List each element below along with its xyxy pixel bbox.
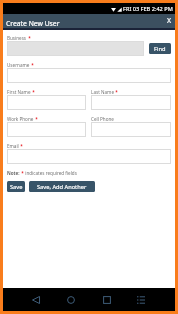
button[interactable]: Save [7, 181, 25, 192]
button[interactable] [7, 149, 171, 164]
staticText: FRI 03 FEB 2:42 PM [123, 5, 173, 13]
button[interactable]: Home [62, 291, 80, 309]
button[interactable]: Menu [132, 291, 150, 309]
staticText: Find [154, 45, 166, 53]
button[interactable] [7, 122, 86, 137]
staticText: Save, Add Another [37, 183, 87, 191]
staticText: Cell Phone [91, 116, 114, 122]
staticText: * [31, 89, 35, 95]
button[interactable] [7, 95, 86, 110]
staticText: * [30, 62, 34, 68]
staticText: * [114, 89, 118, 95]
staticText: Business [7, 35, 27, 41]
staticText: Create New User [6, 19, 60, 28]
staticText: First Name [7, 89, 31, 95]
staticText: * [19, 143, 23, 149]
staticText: Work Phone [7, 116, 34, 122]
staticText: Email [7, 143, 19, 149]
staticText: indicates required fields [24, 170, 77, 176]
staticText: Username [7, 62, 30, 68]
button[interactable] [91, 95, 171, 110]
button[interactable] [7, 68, 171, 83]
button[interactable]: Close [161, 14, 175, 28]
staticText: * [20, 170, 24, 176]
button[interactable]: Save, Add Another [29, 181, 95, 192]
button[interactable]: Recents [98, 291, 116, 309]
staticText: * [27, 35, 31, 41]
staticText: Note: [7, 170, 20, 176]
button[interactable] [91, 122, 171, 137]
staticText: Last Name [91, 89, 114, 95]
staticText: X [167, 16, 172, 26]
staticText: * [34, 116, 38, 122]
staticText: Save [10, 183, 23, 191]
button[interactable]: Find [149, 43, 171, 54]
button[interactable]: Back [27, 291, 45, 309]
